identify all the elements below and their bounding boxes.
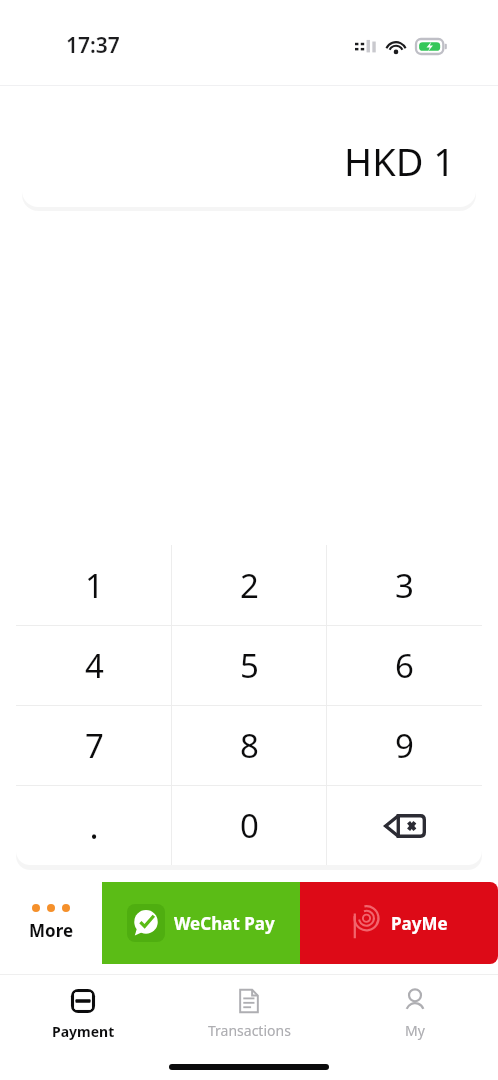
staticText: . xyxy=(89,803,99,849)
button[interactable]: 3 xyxy=(327,545,482,625)
button[interactable]: 9 xyxy=(327,706,482,785)
staticText: 0 xyxy=(240,803,259,848)
button[interactable]: PayMe xyxy=(300,882,498,964)
staticText: 17:37 xyxy=(66,31,120,60)
staticText: 7 xyxy=(85,723,104,768)
button[interactable]: HKD 1 xyxy=(22,115,476,207)
staticText: More xyxy=(29,919,74,942)
staticText: 3 xyxy=(395,563,414,608)
button[interactable]: 6 xyxy=(327,626,482,705)
staticText: WeChat Pay xyxy=(174,912,275,935)
button[interactable]: WeChat Pay xyxy=(102,882,300,964)
staticText: Transactions xyxy=(208,1021,291,1040)
staticText: Payment xyxy=(52,1022,115,1041)
button[interactable]: 0 xyxy=(172,786,327,865)
button[interactable]: . xyxy=(16,786,172,865)
button[interactable]: 2 xyxy=(172,545,327,625)
button[interactable]: More xyxy=(0,882,102,964)
button[interactable]: 7 xyxy=(16,706,172,785)
button[interactable]: 1 xyxy=(16,545,172,625)
button[interactable]: Backspace xyxy=(327,786,482,865)
button[interactable]: Payment xyxy=(0,975,166,1053)
staticText: 9 xyxy=(395,723,414,768)
button[interactable]: 5 xyxy=(172,626,327,705)
staticText: 8 xyxy=(240,723,259,768)
button[interactable]: Transactions xyxy=(166,975,332,1053)
staticText: 6 xyxy=(395,643,414,688)
button[interactable]: 4 xyxy=(16,626,172,705)
staticText: 4 xyxy=(85,643,104,688)
staticText: 2 xyxy=(240,563,259,608)
button[interactable]: 8 xyxy=(172,706,327,785)
staticText: 1 xyxy=(85,563,104,608)
button[interactable]: My xyxy=(332,975,498,1053)
staticText: My xyxy=(405,1021,425,1040)
staticText: PayMe xyxy=(391,912,448,935)
staticText: HKD 1 xyxy=(344,135,456,187)
staticText: 5 xyxy=(240,643,259,688)
